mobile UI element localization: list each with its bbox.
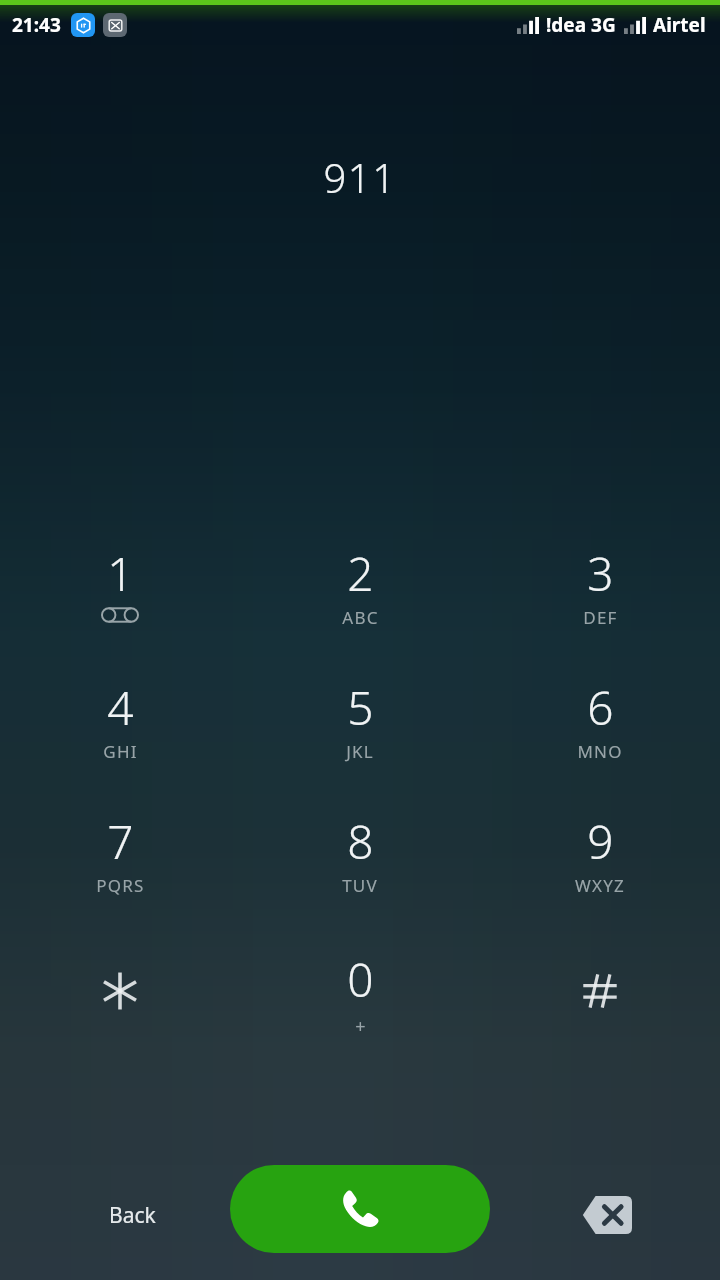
button[interactable]: Star: [0, 930, 240, 1056]
staticText: 3: [587, 542, 614, 605]
staticText: Airtel: [653, 12, 706, 38]
staticText: 8: [347, 810, 374, 873]
staticText: ABC: [342, 606, 379, 629]
button[interactable]: 3: [480, 524, 720, 650]
staticText: 911: [323, 150, 397, 204]
staticText: 6: [587, 676, 614, 739]
staticText: 0: [347, 948, 374, 1011]
staticText: +: [355, 1014, 366, 1039]
staticText: 7: [107, 810, 134, 873]
button[interactable]: 0: [240, 930, 480, 1056]
button[interactable]: 7: [0, 792, 240, 918]
staticText: 9: [587, 810, 614, 873]
staticText: MNO: [577, 740, 623, 763]
button[interactable]: 5: [240, 658, 480, 784]
button[interactable]: 2: [240, 524, 480, 650]
button[interactable]: Backspace: [568, 1177, 644, 1253]
button[interactable]: 8: [240, 792, 480, 918]
button[interactable]: 9: [480, 792, 720, 918]
staticText: !dea 3G: [546, 12, 616, 38]
staticText: DEF: [583, 606, 618, 629]
staticText: PQRS: [96, 874, 145, 897]
staticText: 1: [107, 542, 134, 605]
button[interactable]: Pound: [480, 930, 720, 1056]
staticText: JKL: [346, 740, 374, 763]
staticText: 4: [107, 676, 134, 739]
button[interactable]: Back: [72, 1184, 192, 1246]
staticText: 2: [347, 542, 374, 605]
button[interactable]: 6: [480, 658, 720, 784]
staticText: GHI: [103, 740, 138, 763]
button[interactable]: 1: [0, 524, 240, 650]
staticText: TUV: [342, 874, 378, 897]
staticText: 21:43: [12, 12, 61, 38]
button[interactable]: 4: [0, 658, 240, 784]
staticText: WXYZ: [575, 874, 625, 897]
button[interactable]: Call: [230, 1165, 490, 1253]
staticText: Back: [109, 1201, 156, 1230]
staticText: 5: [347, 676, 374, 739]
